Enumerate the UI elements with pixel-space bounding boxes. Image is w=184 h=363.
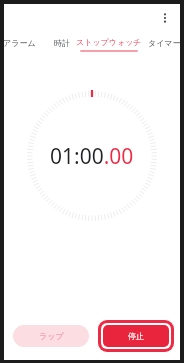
button[interactable]: タイマー [142,32,184,54]
staticText: 停止 [128,331,144,341]
staticText: アラーム [3,38,36,48]
button[interactable]: 停止 [103,325,169,347]
staticText: ストップウォッチ [76,37,142,47]
staticText: タイマー [148,38,181,48]
staticText: 01:00.00 [50,142,134,171]
button[interactable]: アラーム [0,32,42,54]
staticText: ラップ [39,331,64,341]
button[interactable]: More options [155,8,175,28]
button[interactable]: ストップウォッチ [76,32,142,54]
button[interactable]: ラップ [13,325,89,347]
staticText: 時計 [54,38,70,48]
button[interactable]: 時計 [48,32,76,54]
